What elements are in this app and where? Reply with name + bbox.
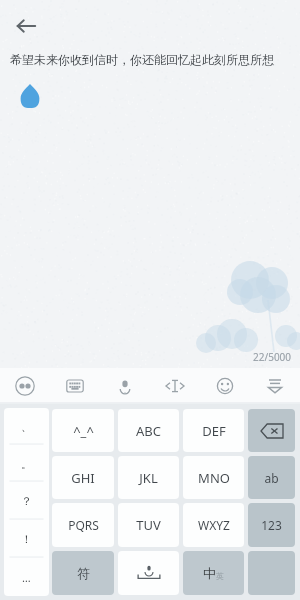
staticText: 中 [203, 565, 216, 581]
button[interactable]: 中 [183, 551, 244, 595]
staticText: ^_^ [73, 422, 94, 440]
staticText: 22/5000 [253, 350, 292, 364]
button[interactable]: ABC [118, 409, 179, 452]
staticText: 英 [216, 571, 224, 581]
button[interactable]: WXYZ [183, 503, 244, 547]
staticText: ABC [136, 422, 161, 440]
button[interactable]: 符 [52, 551, 114, 595]
button[interactable]: Move cursor [150, 368, 200, 404]
button[interactable]: Input method [0, 368, 50, 404]
button[interactable]: TUV [118, 503, 179, 547]
staticText: 希望未来你收到信时，你还能回忆起此刻所思所想 [10, 52, 274, 67]
staticText: WXYZ [198, 517, 230, 533]
staticText: … [22, 570, 31, 585]
button[interactable]: Back [6, 6, 46, 46]
button[interactable]: Emoji [200, 368, 250, 404]
staticText: GHI [71, 469, 95, 487]
button[interactable]: JKL [118, 456, 179, 499]
button[interactable]: ab [248, 456, 295, 499]
button[interactable]: 123 [248, 503, 295, 547]
button[interactable]: ？ [4, 482, 49, 520]
staticText: MNO [198, 469, 230, 487]
staticText: ？ [21, 494, 32, 508]
staticText: ab [264, 470, 279, 486]
button[interactable]: DEF [183, 409, 244, 452]
staticText: JKL [139, 469, 158, 487]
button[interactable]: Keyboard [50, 368, 100, 404]
button[interactable]: GHI [52, 456, 114, 499]
button[interactable]: MNO [183, 456, 244, 499]
button[interactable]: Space [118, 551, 179, 595]
button[interactable]: 、 [4, 408, 49, 445]
staticText: 。 [21, 457, 32, 471]
button[interactable]: Hide keyboard [250, 368, 300, 404]
button[interactable]: Backspace [248, 409, 295, 452]
button[interactable]: Voice input [100, 368, 150, 404]
staticText: 123 [261, 517, 282, 533]
button[interactable]: PQRS [52, 503, 114, 547]
button[interactable]: ！ [4, 520, 49, 558]
staticText: DEF [202, 422, 226, 440]
staticText: PQRS [68, 517, 99, 533]
staticText: ！ [21, 532, 32, 546]
button[interactable]: … [4, 558, 49, 596]
staticText: TUV [136, 516, 161, 534]
staticText: 符 [77, 565, 90, 581]
staticText: 、 [21, 420, 32, 434]
button[interactable]: ^_^ [52, 409, 114, 452]
button[interactable]: 。 [4, 445, 49, 482]
